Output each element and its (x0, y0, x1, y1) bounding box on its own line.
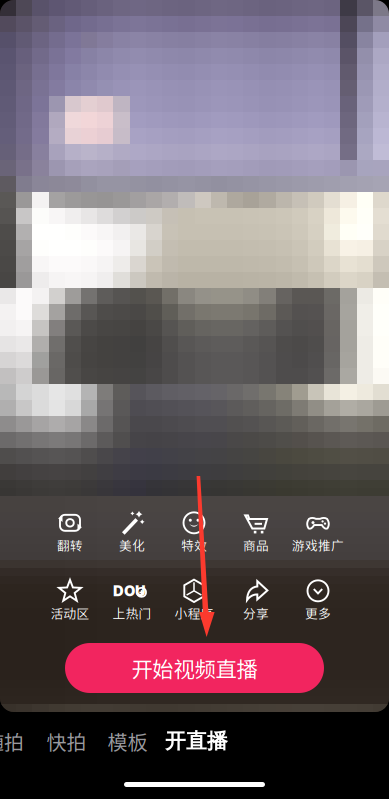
staticText: 模板 (107, 726, 147, 755)
button[interactable]: 特效 (163, 507, 225, 555)
button[interactable]: 翻转 (39, 507, 101, 555)
staticText: 活动区 (50, 604, 89, 622)
staticText: 翻转 (57, 536, 83, 554)
button[interactable]: 更多 (287, 575, 349, 623)
button[interactable]: 开始视频直播 (65, 643, 324, 693)
button[interactable]: 商品 (225, 507, 287, 555)
button[interactable]: 活动区 (39, 575, 101, 623)
button[interactable]: 小程序 (163, 575, 225, 623)
staticText: 开直播 (165, 728, 228, 754)
staticText: 美化 (119, 536, 145, 554)
staticText: 游戏推广 (292, 536, 344, 554)
button[interactable]: 分享 (225, 575, 287, 623)
button[interactable]: DOU (101, 575, 163, 623)
staticText: 更多 (305, 604, 331, 622)
staticText: 开始视频直播 (131, 653, 257, 683)
button[interactable]: 美化 (101, 507, 163, 555)
button[interactable]: 开直播 (160, 719, 232, 763)
button[interactable]: 快拍 (30, 719, 102, 763)
staticText: 特效 (181, 536, 207, 554)
button[interactable]: 游戏推广 (287, 507, 349, 555)
staticText: 小程序 (174, 604, 213, 622)
button[interactable]: 随拍 (0, 719, 40, 763)
staticText: DOU (113, 582, 146, 600)
staticText: 随拍 (0, 726, 24, 755)
staticText: 商品 (243, 536, 269, 554)
staticText: 分享 (243, 604, 269, 622)
button[interactable]: 模板 (91, 719, 163, 763)
staticText: 上热门 (112, 604, 151, 622)
staticText: 快拍 (46, 726, 86, 755)
